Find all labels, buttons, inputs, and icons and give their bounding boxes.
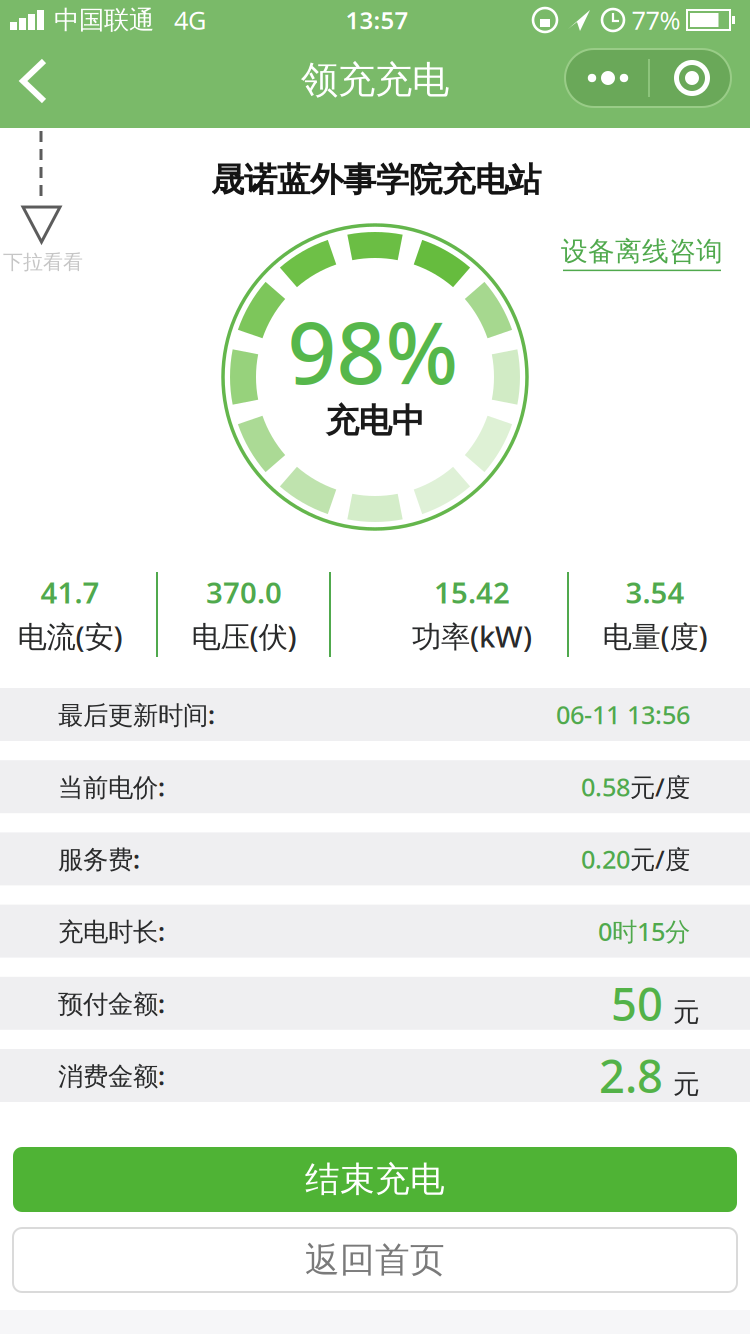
staticText: 电量(度) (602, 616, 707, 655)
staticText: 中国联通 (54, 4, 154, 35)
staticText: 0.58 (581, 770, 630, 803)
staticText: 充电时长: (58, 914, 165, 948)
staticText: 13:57 (345, 4, 408, 36)
staticText: 15.42 (434, 572, 510, 611)
staticText: 结束充电 (305, 1158, 445, 1201)
button[interactable]: 返回首页 (13, 1228, 737, 1292)
staticText: 最后更新时间: (58, 698, 215, 731)
staticText: 41.7 (40, 572, 99, 611)
staticText: 领充充电 (301, 57, 449, 103)
staticText: 77% (631, 3, 680, 37)
staticText: 元/度 (630, 842, 690, 876)
staticText: 3.54 (625, 572, 684, 611)
staticText: 晟诺蓝外事学院充电站 (211, 159, 541, 200)
staticText: 50 (611, 973, 663, 1033)
staticText: 电压(伏) (191, 616, 296, 655)
staticText: 充电中 (325, 400, 424, 441)
staticText: 0.20 (581, 842, 630, 876)
staticText: 2.8 (599, 1045, 663, 1106)
staticText: 元 (673, 996, 700, 1028)
button[interactable] (14, 58, 70, 104)
staticText: 370.0 (206, 572, 282, 611)
staticText: 返回首页 (305, 1239, 445, 1281)
staticText: 服务费: (58, 842, 140, 876)
button[interactable]: 设备离线咨询 (561, 235, 723, 271)
staticText: 4G (174, 3, 206, 37)
button[interactable] (565, 49, 731, 107)
staticText: 下拉看看 (3, 250, 83, 274)
button[interactable]: 结束充电 (13, 1147, 737, 1212)
staticText: 功率(kW) (412, 616, 532, 655)
staticText: 0时15分 (598, 914, 690, 948)
staticText: 06-11 13:56 (556, 698, 690, 731)
staticText: 当前电价: (58, 770, 165, 803)
staticText: 设备离线咨询 (561, 235, 723, 268)
staticText: 消费金额: (58, 1059, 165, 1092)
staticText: 电流(安) (17, 616, 122, 655)
staticText: 98% (287, 294, 458, 408)
staticText: 预付金额: (58, 986, 165, 1020)
staticText: 元 (673, 1068, 700, 1101)
staticText: 元/度 (630, 770, 690, 803)
